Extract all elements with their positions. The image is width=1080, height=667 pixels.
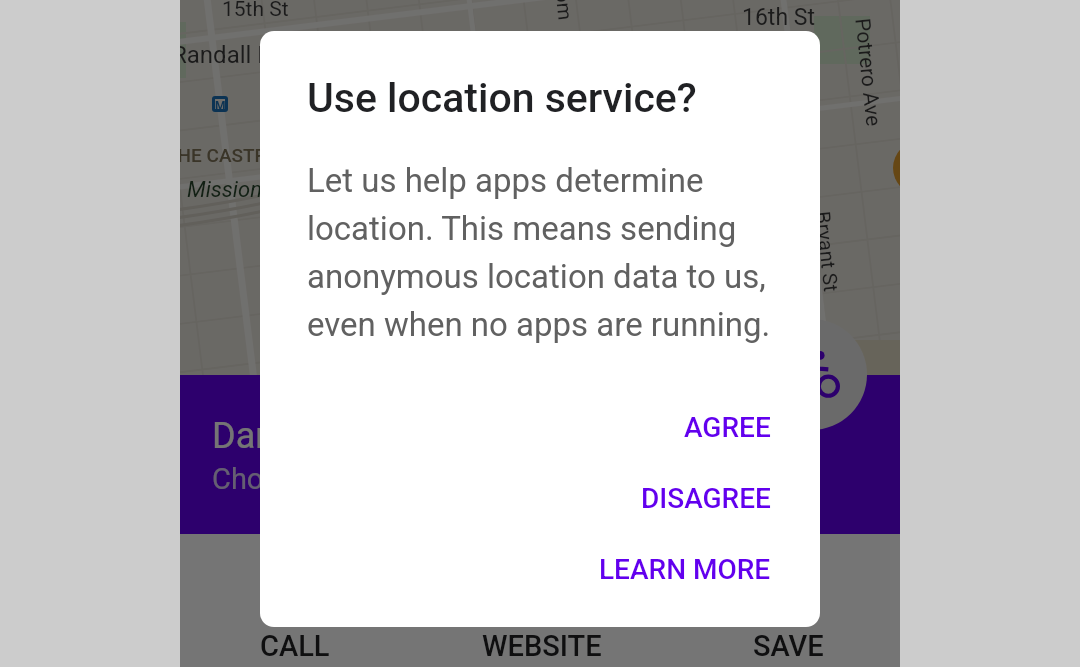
staticText: DISAGREE — [641, 482, 771, 515]
button[interactable]: AGREE — [672, 401, 783, 454]
staticText: LEARN MORE — [599, 553, 771, 586]
staticText: M — [215, 99, 225, 109]
button[interactable]: LEARN MORE — [587, 543, 783, 596]
staticText: SAVE — [753, 629, 824, 663]
button[interactable]: DISAGREE — [629, 472, 783, 525]
staticText: Use location service? — [307, 74, 697, 122]
staticText: Dandelion Chocolate — [212, 415, 544, 457]
staticText: Randall Museum — [180, 41, 351, 69]
staticText: WEBSITE — [482, 629, 602, 663]
staticText: AGREE — [684, 411, 771, 444]
button[interactable]: Directions by bike — [756, 319, 867, 430]
staticText: Chocolate shop · Open · 5 min — [212, 462, 598, 496]
staticText: Bryant St — [812, 210, 843, 293]
staticText: om — [551, 0, 577, 21]
staticText: 15th St — [222, 0, 289, 22]
button[interactable]: SAVE — [747, 573, 830, 663]
button[interactable]: CALL — [254, 573, 336, 663]
staticText: THE CASTRO — [180, 144, 280, 166]
staticText: Let us help apps determine location. Thi… — [307, 161, 775, 344]
staticText: Castro St — [226, 459, 257, 544]
staticText: 16th St — [742, 4, 815, 31]
staticText: Potrero Ave — [849, 17, 886, 128]
button[interactable]: WEBSITE — [476, 573, 608, 663]
staticText: Mission — [187, 177, 262, 203]
staticText: CALL — [260, 629, 330, 663]
